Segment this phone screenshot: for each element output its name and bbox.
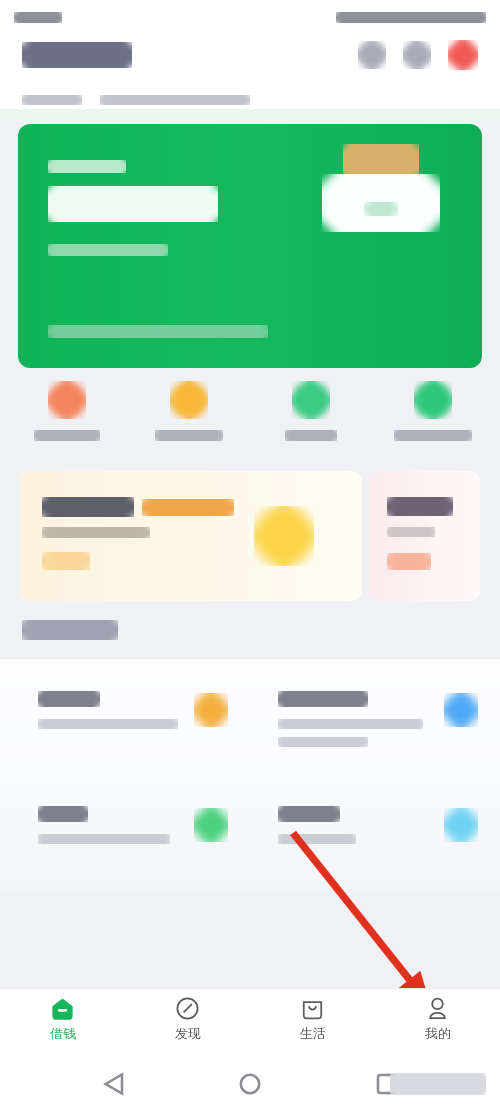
button[interactable]	[0, 774, 250, 889]
button[interactable]: Home	[227, 1061, 273, 1107]
staticText: 我的	[425, 1025, 451, 1041]
staticText: 发现	[175, 1025, 201, 1041]
button[interactable]	[250, 774, 500, 889]
button[interactable]	[256, 381, 366, 441]
staticText: 生活	[300, 1025, 326, 1041]
button[interactable]	[378, 381, 488, 441]
button[interactable]	[20, 471, 362, 601]
button[interactable]: Recents	[364, 1061, 410, 1107]
button[interactable]: 生活	[250, 988, 375, 1056]
button[interactable]	[250, 659, 500, 774]
button[interactable]	[369, 471, 480, 601]
button[interactable]: 借钱	[0, 988, 125, 1056]
button[interactable]	[0, 659, 250, 774]
button[interactable]	[18, 124, 482, 368]
button[interactable]: Back	[91, 1061, 137, 1107]
button[interactable]	[134, 381, 244, 441]
staticText: 借钱	[50, 1025, 76, 1041]
button[interactable]	[12, 381, 122, 441]
button[interactable]: 发现	[125, 988, 250, 1056]
button[interactable]: 我的	[375, 988, 500, 1056]
